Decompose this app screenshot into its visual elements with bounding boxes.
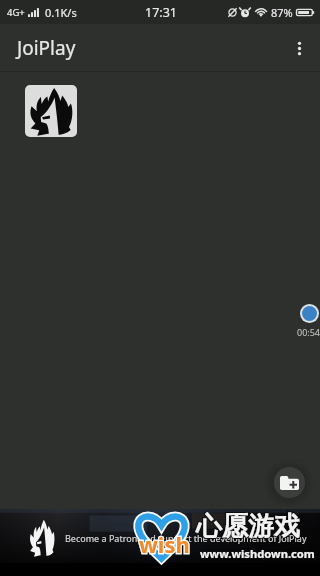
staticText: 4G+ [7, 6, 25, 19]
button[interactable]: Add folder [274, 467, 305, 498]
staticText: wish [139, 529, 190, 559]
staticText: www.wishdown.com [200, 546, 315, 561]
button[interactable]: Running game [302, 306, 317, 321]
staticText: JoiPlay [17, 35, 76, 61]
staticText: 17:31 [145, 4, 177, 21]
button[interactable]: JoiPlay game [25, 85, 77, 137]
staticText: 心愿游戏 [196, 510, 300, 543]
staticText: 心愿游戏 [196, 510, 300, 543]
staticText: 0.1K/s [45, 5, 77, 20]
staticText: 87% [271, 5, 293, 20]
staticText: Become a Patron and support the developm… [65, 532, 307, 544]
staticText: wish [139, 529, 190, 559]
staticText: 00:54 [297, 326, 320, 338]
button[interactable]: More options [279, 24, 320, 72]
button[interactable]: Become a Patron advertisement [0, 509, 320, 563]
staticText: www.wishdown.com [200, 546, 315, 561]
